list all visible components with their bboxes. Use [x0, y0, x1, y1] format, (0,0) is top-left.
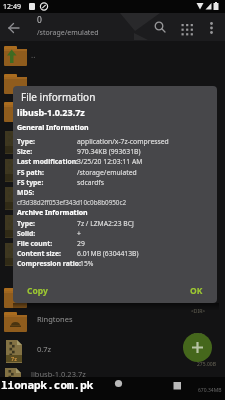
- staticText: /storage/emulated: [37, 28, 99, 38]
- staticText: 0.7z: [37, 344, 52, 354]
- button[interactable]: [183, 333, 212, 362]
- button[interactable]: OK: [180, 280, 213, 300]
- staticText: Compression ratio:: [17, 259, 81, 268]
- staticText: 0: [37, 14, 42, 26]
- staticText: ..: [31, 49, 36, 60]
- button[interactable]: [4, 17, 25, 37]
- staticText: 6.01MB (6304413B): [77, 249, 139, 258]
- staticText: Archive Information: [17, 208, 88, 218]
- button[interactable]: Copy: [17, 280, 57, 300]
- staticText: Type:: [17, 137, 35, 146]
- staticText: Copy: [27, 285, 48, 297]
- button[interactable]: [0, 44, 225, 72]
- staticText: File information: [21, 90, 96, 104]
- staticText: libusb-1.0.23.7z: [17, 106, 85, 118]
- button[interactable]: [150, 17, 170, 37]
- staticText: Type:: [17, 219, 35, 228]
- staticText: 3/25/20 12:03:11 AM: [77, 157, 143, 166]
- staticText: <DIR>: [191, 308, 206, 315]
- staticText: Ringtones: [37, 314, 73, 324]
- staticText: FS type:: [17, 178, 44, 187]
- staticText: <DIR>: [191, 332, 206, 339]
- staticText: File count:: [17, 239, 53, 248]
- staticText: 7z / LZMA2:23 BCJ: [77, 219, 134, 228]
- staticText: 670.34MB: [198, 387, 222, 394]
- button[interactable]: [159, 377, 196, 400]
- button[interactable]: [0, 366, 225, 378]
- staticText: 29: [77, 239, 85, 248]
- staticText: 970.34KB (993631B): [77, 147, 141, 156]
- staticText: libusb-1.0.23.7z: [31, 369, 86, 379]
- staticText: Solid:: [17, 229, 36, 238]
- staticText: lionapk.com.pk: [1, 377, 94, 392]
- staticText: 7z: [10, 383, 16, 390]
- button[interactable]: [202, 17, 220, 37]
- staticText: 12:49: [3, 2, 21, 12]
- staticText: General Information: [17, 123, 89, 133]
- staticText: OK: [190, 285, 203, 297]
- staticText: FS path:: [17, 168, 44, 177]
- staticText: 7z: [11, 355, 17, 362]
- staticText: sdcardfs: [77, 178, 104, 187]
- button[interactable]: [0, 310, 225, 338]
- staticText: /storage/emulated: [77, 168, 137, 177]
- staticText: +: [77, 229, 81, 238]
- button[interactable]: [100, 377, 137, 400]
- staticText: MD5:: [17, 188, 35, 197]
- staticText: Content size:: [17, 249, 61, 258]
- button[interactable]: [0, 338, 225, 366]
- staticText: Size:: [17, 147, 33, 156]
- staticText: application/x-7z-compressed: [77, 137, 169, 146]
- staticText: 15%: [80, 259, 94, 268]
- staticText: Last modification:: [17, 157, 78, 166]
- staticText: cf3d38d2ff053ef343d10c0b8b0950c2: [17, 198, 127, 207]
- button[interactable]: [177, 17, 197, 37]
- staticText: 275.00B: [197, 361, 216, 368]
